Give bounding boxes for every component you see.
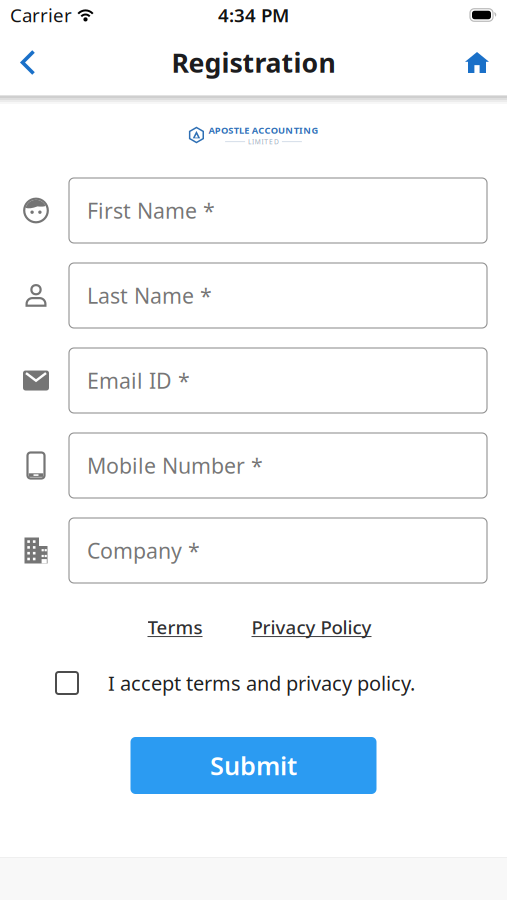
button[interactable]: Mobile Number * xyxy=(69,433,487,498)
button[interactable]: Terms xyxy=(147,615,202,639)
button[interactable]: I accept terms and privacy policy xyxy=(56,672,78,694)
button[interactable]: Privacy Policy xyxy=(251,615,371,639)
button[interactable]: Back xyxy=(0,49,36,75)
staticText: Mobile Number * xyxy=(87,451,263,480)
staticText: Company * xyxy=(87,536,200,565)
staticText: Terms xyxy=(147,615,202,639)
staticText: I accept terms and privacy policy. xyxy=(108,670,415,696)
button[interactable]: Company * xyxy=(69,518,487,583)
staticText: APOSTLE ACCOUNTING xyxy=(208,124,319,136)
button[interactable]: First Name * xyxy=(69,178,487,243)
staticText: Submit xyxy=(210,749,297,782)
staticText: 4:34 PM xyxy=(218,3,289,27)
staticText: LIMITED xyxy=(248,137,279,146)
button[interactable]: Home xyxy=(465,51,507,73)
staticText: First Name * xyxy=(87,196,215,225)
button[interactable]: Last Name * xyxy=(69,263,487,328)
button[interactable]: Submit xyxy=(130,737,376,794)
staticText: Registration xyxy=(171,45,335,80)
button[interactable]: Email ID * xyxy=(69,348,487,413)
staticText: Privacy Policy xyxy=(251,615,371,639)
staticText: Carrier xyxy=(10,3,72,27)
staticText: Email ID * xyxy=(87,366,190,395)
staticText: Last Name * xyxy=(87,281,212,310)
